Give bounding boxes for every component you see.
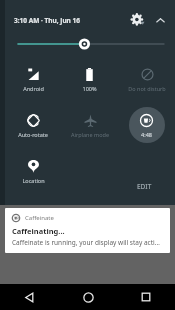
button[interactable]: Auto-rotate	[5, 106, 61, 152]
button[interactable]: Location	[5, 152, 61, 198]
button[interactable]: 100%	[61, 60, 118, 106]
button[interactable]: EDIT	[132, 179, 157, 194]
button[interactable]: Settings	[130, 12, 146, 28]
button[interactable]: Caffeinate	[5, 208, 170, 253]
button[interactable]: Home	[59, 284, 117, 310]
staticText: EDIT	[137, 182, 152, 191]
button[interactable]: Do not disturb	[118, 60, 175, 106]
button[interactable]: Airplane mode	[61, 106, 118, 152]
button[interactable]: 4:48	[118, 106, 175, 152]
staticText: Auto-rotate	[18, 131, 48, 138]
staticText: Caffeinate	[25, 214, 54, 222]
staticText: 100%	[82, 85, 97, 92]
button[interactable]: Android	[5, 60, 61, 106]
button[interactable]: Collapse	[153, 13, 167, 27]
staticText: 3:10 AM · Thu, Jun 16	[14, 16, 80, 25]
staticText: Android	[23, 85, 44, 92]
staticText: 4:48	[141, 131, 152, 138]
button[interactable]: Back	[0, 284, 59, 310]
staticText: Airplane mode	[71, 131, 109, 138]
button[interactable]: Recents	[117, 284, 175, 310]
staticText: Do not disturb	[128, 85, 166, 92]
staticText: Location	[22, 177, 45, 184]
button[interactable]: Brightness	[18, 37, 164, 51]
staticText: Caffeinate is running, your display will…	[12, 238, 163, 247]
staticText: Caffeinating...	[12, 226, 65, 236]
